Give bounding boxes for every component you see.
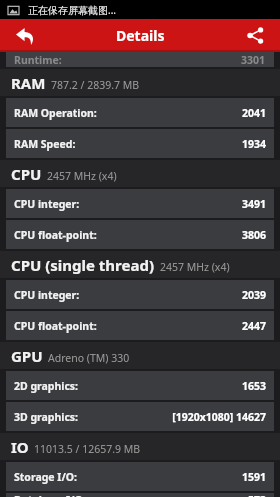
staticText: 3D graphics:	[14, 410, 79, 424]
staticText: 3491	[241, 197, 266, 211]
button[interactable]: CPU float-point:	[6, 220, 274, 249]
button[interactable]: CPU float-point:	[6, 311, 274, 340]
button[interactable]: Database I/O:	[6, 493, 274, 497]
staticText: Adreno (TM) 330	[48, 351, 130, 365]
staticText: CPU	[11, 164, 42, 184]
button[interactable]: RAM	[0, 69, 280, 96]
staticText: Details	[116, 26, 165, 45]
button[interactable]: RAM Operation:	[6, 98, 274, 127]
staticText: 正在保存屏幕截图...	[28, 3, 117, 17]
staticText: CPU (single thread)	[11, 255, 155, 275]
staticText: 1653	[241, 379, 266, 393]
staticText: 2457 MHz (x4)	[47, 169, 117, 183]
staticText: 2447	[241, 319, 266, 333]
staticText: RAM Operation:	[14, 106, 97, 120]
staticText: 1591	[241, 470, 266, 484]
staticText: 2039	[241, 288, 266, 302]
staticText: 11013.5 / 12657.9 MB	[34, 442, 141, 456]
button[interactable]: CPU integer:	[6, 280, 274, 309]
button[interactable]: CPU	[0, 160, 280, 187]
staticText: GPU	[11, 346, 43, 366]
button[interactable]: IO	[0, 433, 280, 460]
staticText: 1934	[241, 137, 266, 151]
button[interactable]: Back	[0, 19, 50, 52]
staticText: Database I/O:	[14, 493, 86, 497]
staticText: Runtime:	[14, 53, 62, 67]
staticText: 3806	[241, 228, 266, 242]
button[interactable]: 2D graphics:	[6, 371, 274, 400]
staticText: 2041	[241, 106, 266, 120]
staticText: CPU float-point:	[14, 319, 97, 333]
staticText: 3301	[241, 53, 266, 67]
staticText: CPU integer:	[14, 197, 80, 211]
button[interactable]: CPU integer:	[6, 189, 274, 218]
button[interactable]: CPU (single thread)	[0, 251, 280, 278]
staticText: [1920x1080] 14627	[172, 410, 266, 424]
staticText: 573	[247, 493, 266, 497]
button[interactable]: Share	[230, 19, 280, 52]
button[interactable]: 3D graphics:	[6, 402, 274, 431]
staticText: 2D graphics:	[14, 379, 79, 393]
staticText: IO	[11, 437, 29, 457]
staticText: 787.2 / 2839.7 MB	[51, 78, 140, 92]
staticText: CPU integer:	[14, 288, 80, 302]
staticText: CPU float-point:	[14, 228, 97, 242]
staticText: RAM	[11, 73, 46, 93]
button[interactable]: RAM Speed:	[6, 129, 274, 158]
staticText: RAM Speed:	[14, 137, 76, 151]
staticText: Storage I/O:	[14, 470, 78, 484]
staticText: 2457 MHz (x4)	[160, 260, 230, 274]
button[interactable]: GPU	[0, 342, 280, 369]
button[interactable]: Runtime:	[6, 52, 274, 67]
button[interactable]: Storage I/O:	[6, 462, 274, 491]
